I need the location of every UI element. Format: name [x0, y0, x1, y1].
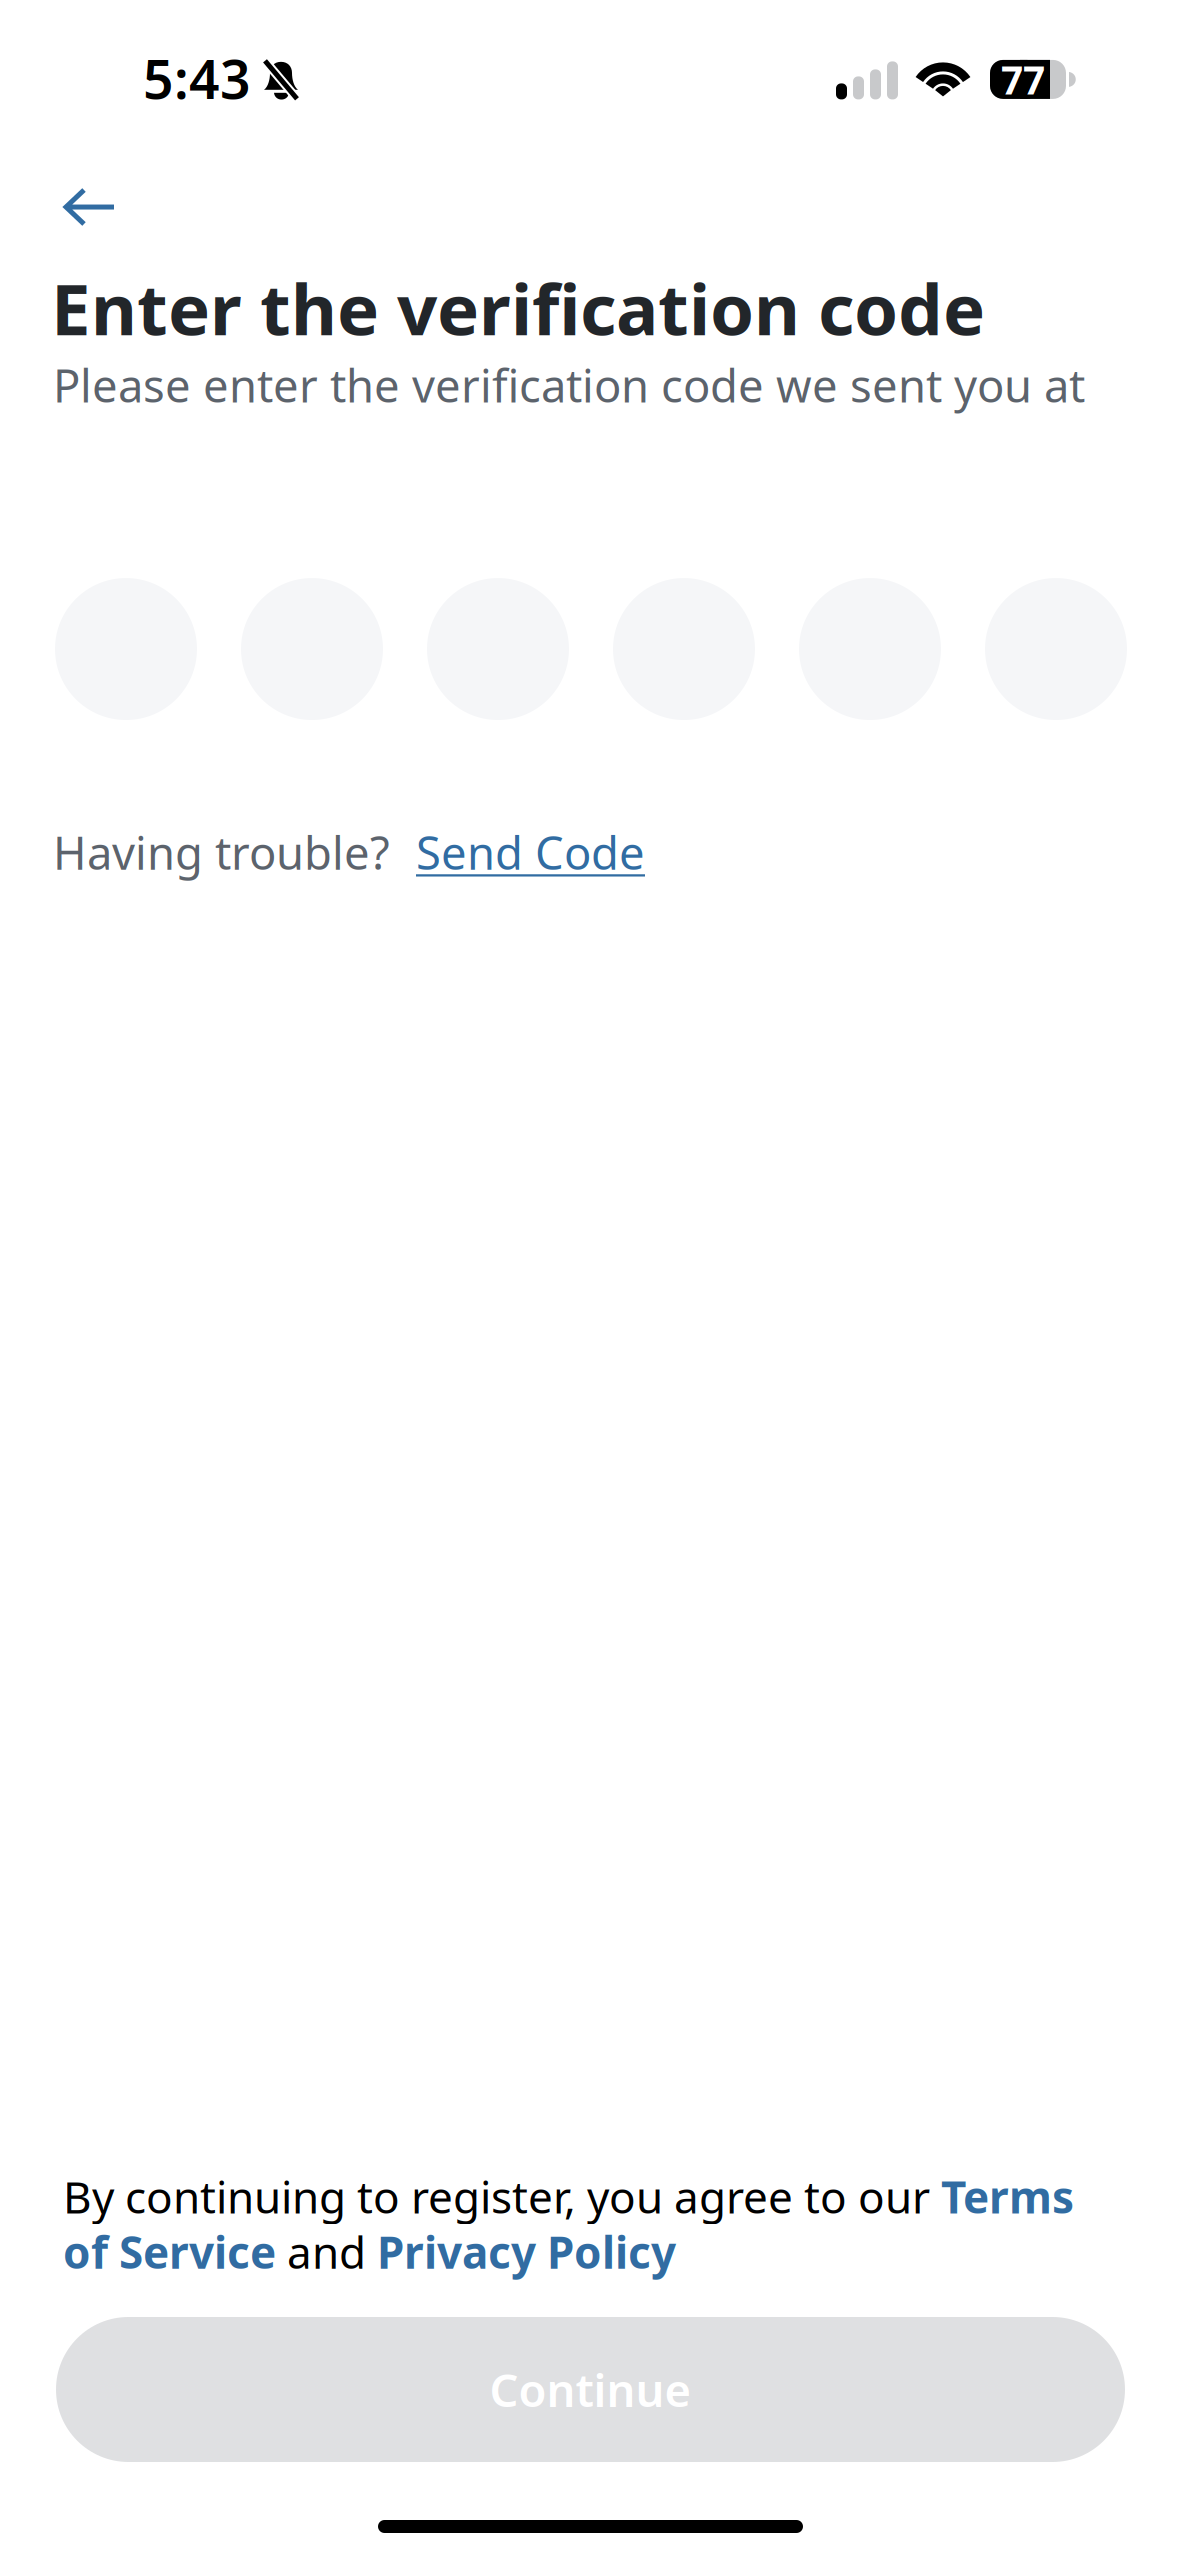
staticText: of Service [63, 2223, 276, 2281]
staticText: Please enter the verification code we se… [53, 355, 1085, 415]
button[interactable]: Verification code digit 2 [241, 578, 383, 720]
button[interactable]: Verification code digit 5 [799, 578, 941, 720]
staticText: Continue [489, 2359, 691, 2420]
staticText: and [276, 2223, 377, 2281]
button[interactable]: Back [0, 150, 157, 250]
button[interactable]: Send Code [416, 822, 645, 882]
button[interactable]: of Service [63, 2223, 276, 2281]
staticText: Having trouble? [53, 822, 390, 882]
staticText: 5:43 [143, 43, 251, 114]
button[interactable]: Verification code digit 1 [55, 578, 197, 720]
button[interactable]: Verification code digit 6 [985, 578, 1127, 720]
staticText: Terms [941, 2167, 1074, 2225]
staticText: Privacy Policy [377, 2223, 676, 2281]
button[interactable]: Verification code digit 3 [427, 578, 569, 720]
button[interactable]: Verification code digit 4 [613, 578, 755, 720]
staticText: By continuing to register, you agree to … [63, 2167, 941, 2225]
staticText: 77 [1001, 54, 1045, 105]
button[interactable]: Continue [56, 2317, 1125, 2462]
button[interactable]: Privacy Policy [377, 2223, 676, 2281]
staticText: Send Code [416, 822, 645, 882]
button[interactable]: Terms [941, 2167, 1074, 2225]
staticText: Enter the verification code [51, 261, 985, 355]
